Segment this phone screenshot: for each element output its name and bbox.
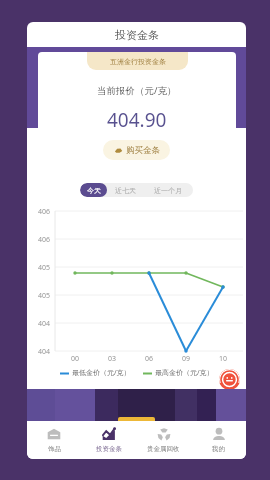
staticText: 406 [38, 235, 51, 245]
staticText: 404.90 [107, 107, 167, 133]
staticText: 10 [219, 354, 228, 364]
staticText: 06 [145, 354, 154, 364]
staticText: 404 [38, 347, 51, 357]
staticText: 最高金价（元/克） [155, 368, 214, 378]
staticText: 405 [38, 263, 51, 273]
staticText: 购买金条 [126, 145, 160, 156]
button[interactable]: 今天 [80, 183, 107, 197]
staticText: 近一个月 [154, 186, 182, 195]
button[interactable]: 我的 [191, 421, 246, 459]
staticText: 投资金条 [96, 445, 122, 453]
staticText: 404 [38, 319, 51, 329]
button[interactable]: 投资金条 [81, 421, 136, 459]
staticText: 405 [38, 291, 51, 301]
staticText: 饰品 [48, 445, 61, 453]
staticText: 贵金属回收 [147, 445, 180, 453]
button[interactable]: 近七天 [107, 183, 143, 197]
staticText: 我的 [212, 445, 225, 453]
staticText: 投资金条 [115, 28, 159, 42]
button[interactable]: 贵金属回收 [136, 421, 191, 459]
staticText: 今天 [87, 186, 101, 195]
staticText: 五洲金行投资金条 [110, 57, 166, 66]
button[interactable]: 购买金条 [103, 140, 170, 160]
button[interactable]: 近一个月 [143, 183, 193, 197]
staticText: 近七天 [115, 186, 136, 195]
staticText: 09 [182, 354, 191, 364]
button[interactable]: 在线客服 [219, 369, 240, 390]
button[interactable]: 饰品 [27, 421, 81, 459]
staticText: 00 [71, 354, 80, 364]
staticText: 406 [38, 207, 51, 217]
staticText: 当前报价（元/克） [97, 84, 177, 97]
staticText: 最低金价（元/克） [72, 368, 131, 378]
staticText: 03 [108, 354, 117, 364]
